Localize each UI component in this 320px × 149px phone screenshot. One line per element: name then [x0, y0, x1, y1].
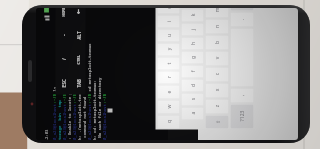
button[interactable]: . [272, 12, 295, 26]
button[interactable]: z [247, 99, 270, 113]
button[interactable]: ⇧ [247, 115, 270, 128]
staticText: sh: ./metasploit-termux: [56, 84, 61, 140]
staticText: ALT [187, 30, 193, 39]
staticText: ./metasploit-termux [51, 45, 56, 91]
button[interactable]: - [167, 23, 182, 47]
button[interactable]: g [223, 51, 245, 63]
button[interactable]: r [199, 71, 221, 83]
staticText: u0_a23@localhost [81, 103, 86, 140]
staticText: u0_a23@localhost [51, 103, 56, 140]
button[interactable]: t [199, 57, 221, 69]
staticText: u [207, 33, 214, 37]
button[interactable]: e [199, 85, 221, 98]
button[interactable]: b [247, 35, 270, 49]
button[interactable]: c [247, 67, 270, 81]
button[interactable]: ⏎ [272, 8, 295, 10]
button[interactable]: x [247, 83, 270, 97]
button[interactable]: w [199, 100, 221, 113]
button[interactable]: i [199, 15, 221, 27]
button[interactable]: h [223, 37, 245, 49]
button[interactable]: a [223, 107, 245, 119]
button[interactable]: / [167, 47, 182, 71]
button[interactable]: HOME [167, 8, 182, 23]
button[interactable] [182, 8, 197, 23]
staticText: u0_a23@localhost [41, 103, 46, 140]
staticText: d [231, 83, 238, 87]
staticText: :~/$ [66, 91, 71, 103]
button[interactable]: ALT [182, 23, 197, 47]
button[interactable]: , [272, 88, 295, 102]
staticText: j [231, 28, 238, 30]
button[interactable]: n [247, 19, 270, 33]
button[interactable]: u [199, 29, 221, 41]
staticText: command not found [61, 96, 66, 140]
button[interactable]: Space [272, 28, 295, 86]
button[interactable]: CTRL [182, 47, 197, 71]
staticText: sh: cd: metasploit-termux: [71, 79, 76, 140]
button[interactable]: ?123 [272, 104, 295, 128]
button[interactable]: ESC [167, 71, 182, 94]
staticText: :~/$ [81, 91, 86, 103]
staticText: No such file or directory [76, 77, 81, 140]
staticText: TAB [187, 78, 193, 87]
staticText: :~/$ [51, 91, 56, 103]
button[interactable]: f [223, 65, 245, 77]
button[interactable]: s [223, 93, 245, 105]
button[interactable]: q [199, 115, 221, 128]
staticText: u0_a23@localhost [66, 103, 71, 140]
button[interactable]: m [247, 8, 270, 17]
button[interactable]: TAB [182, 71, 197, 94]
button[interactable]: d [223, 79, 245, 91]
button[interactable]: j [223, 23, 245, 35]
button[interactable]: y [199, 43, 221, 55]
button[interactable]: o [199, 8, 221, 13]
button[interactable]: v [247, 51, 270, 65]
button[interactable]: k [223, 9, 245, 21]
staticText: ESC [172, 78, 178, 87]
staticText: E: Unable to locate package [46, 77, 51, 140]
